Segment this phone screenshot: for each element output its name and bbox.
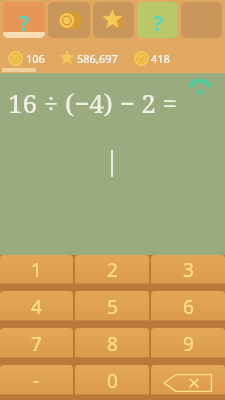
button[interactable]: 9 <box>151 328 225 363</box>
button[interactable]: 4 <box>0 291 73 326</box>
button[interactable]: 2 <box>75 255 149 289</box>
staticText: - <box>33 368 40 394</box>
staticText: 6 <box>183 294 194 320</box>
staticText: 7 <box>31 331 42 357</box>
staticText: 2 <box>107 257 118 283</box>
button[interactable]: 6 <box>151 291 225 326</box>
staticText: 418 <box>151 51 170 66</box>
button[interactable]: - <box>0 365 73 400</box>
button[interactable]: Tile <box>3 2 45 38</box>
staticText: 9 <box>183 331 194 357</box>
staticText: 8 <box>107 331 118 357</box>
staticText: 0 <box>107 368 118 394</box>
staticText: 1 <box>31 257 42 283</box>
button[interactable]: 0 <box>75 365 149 400</box>
staticText: ? <box>145 7 171 33</box>
staticText: 4 <box>31 294 42 320</box>
button[interactable]: Hint <box>186 75 214 103</box>
staticText: 586,697 <box>77 51 118 66</box>
staticText: 3 <box>183 257 194 283</box>
button[interactable]: 1 <box>0 255 73 289</box>
staticText: 16 ÷ (−4) − 2 = <box>8 85 178 120</box>
button[interactable]: 3 <box>151 255 225 289</box>
staticText: 5 <box>107 294 118 320</box>
button[interactable]: 8 <box>75 328 149 363</box>
staticText: 106 <box>26 51 45 66</box>
button[interactable]: Backspace <box>151 365 225 400</box>
staticText: ? <box>11 7 37 33</box>
button[interactable]: 5 <box>75 291 149 326</box>
button[interactable]: 7 <box>0 328 73 363</box>
button[interactable]: Tile <box>48 2 90 38</box>
button[interactable]: Tile <box>93 2 134 38</box>
button[interactable]: Tile <box>137 2 178 38</box>
